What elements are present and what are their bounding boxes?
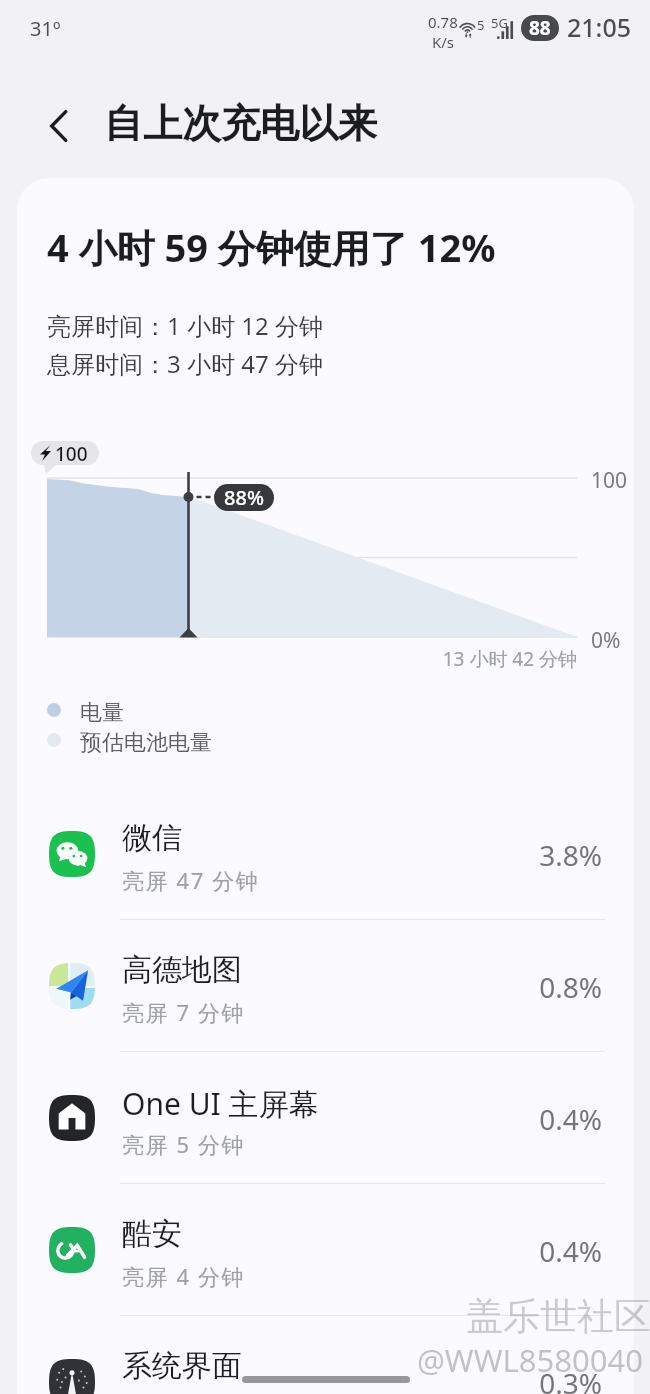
staticText: 预估电池电量 [80,729,212,757]
staticText: 亮屏 7 分钟 [122,997,246,1027]
staticText: 0.78 [428,12,458,32]
staticText: 0.8% [442,968,602,1006]
staticText: 亮屏 5 分钟 [122,1129,246,1159]
staticText: 5 [477,16,485,34]
staticText: 88% [224,484,264,511]
staticText: 88 [529,15,551,41]
button[interactable]: Back [32,98,88,154]
staticText: 31º [30,15,61,42]
staticText: 系统界面 [122,1347,242,1385]
staticText: 亮屏 47 分钟 [122,865,260,895]
staticText: One UI 主屏幕 [122,1083,319,1124]
staticText: 21:05 [567,10,632,44]
staticText: 亮屏时间：1 小时 12 分钟 [47,309,323,342]
staticText: 高德地图 [122,951,242,989]
staticText: @WWL8580040 [417,1339,643,1381]
staticText: 0% [591,626,621,655]
staticText: 100 [591,466,628,495]
staticText: 100 [55,441,88,465]
staticText: 亮屏 4 分钟 [122,1261,246,1291]
staticText: 5G [491,14,508,32]
staticText: 息屏时间：3 小时 47 分钟 [47,347,323,380]
button[interactable]: 微信 [17,789,634,921]
staticText: 0.3% [442,1364,602,1394]
staticText: 0.4% [442,1100,602,1138]
staticText: 自上次充电以来 [104,99,377,148]
button[interactable]: 系统界面 [17,1317,634,1394]
staticText: 酷安 [122,1215,182,1253]
staticText: 盖乐世社区 [466,1293,650,1340]
button[interactable]: 高德地图 [17,921,634,1053]
staticText: 3.8% [442,836,602,874]
staticText: 0.4% [442,1232,602,1270]
staticText: 4 小时 59 分钟使用了 12% [47,221,496,273]
staticText: K/s [432,32,455,52]
staticText: 微信 [122,819,182,857]
staticText: 电量 [80,699,124,727]
staticText: 13 小时 42 分钟 [377,646,577,672]
button[interactable]: 酷安 [17,1185,634,1317]
button[interactable]: One UI 主屏幕 [17,1053,634,1185]
